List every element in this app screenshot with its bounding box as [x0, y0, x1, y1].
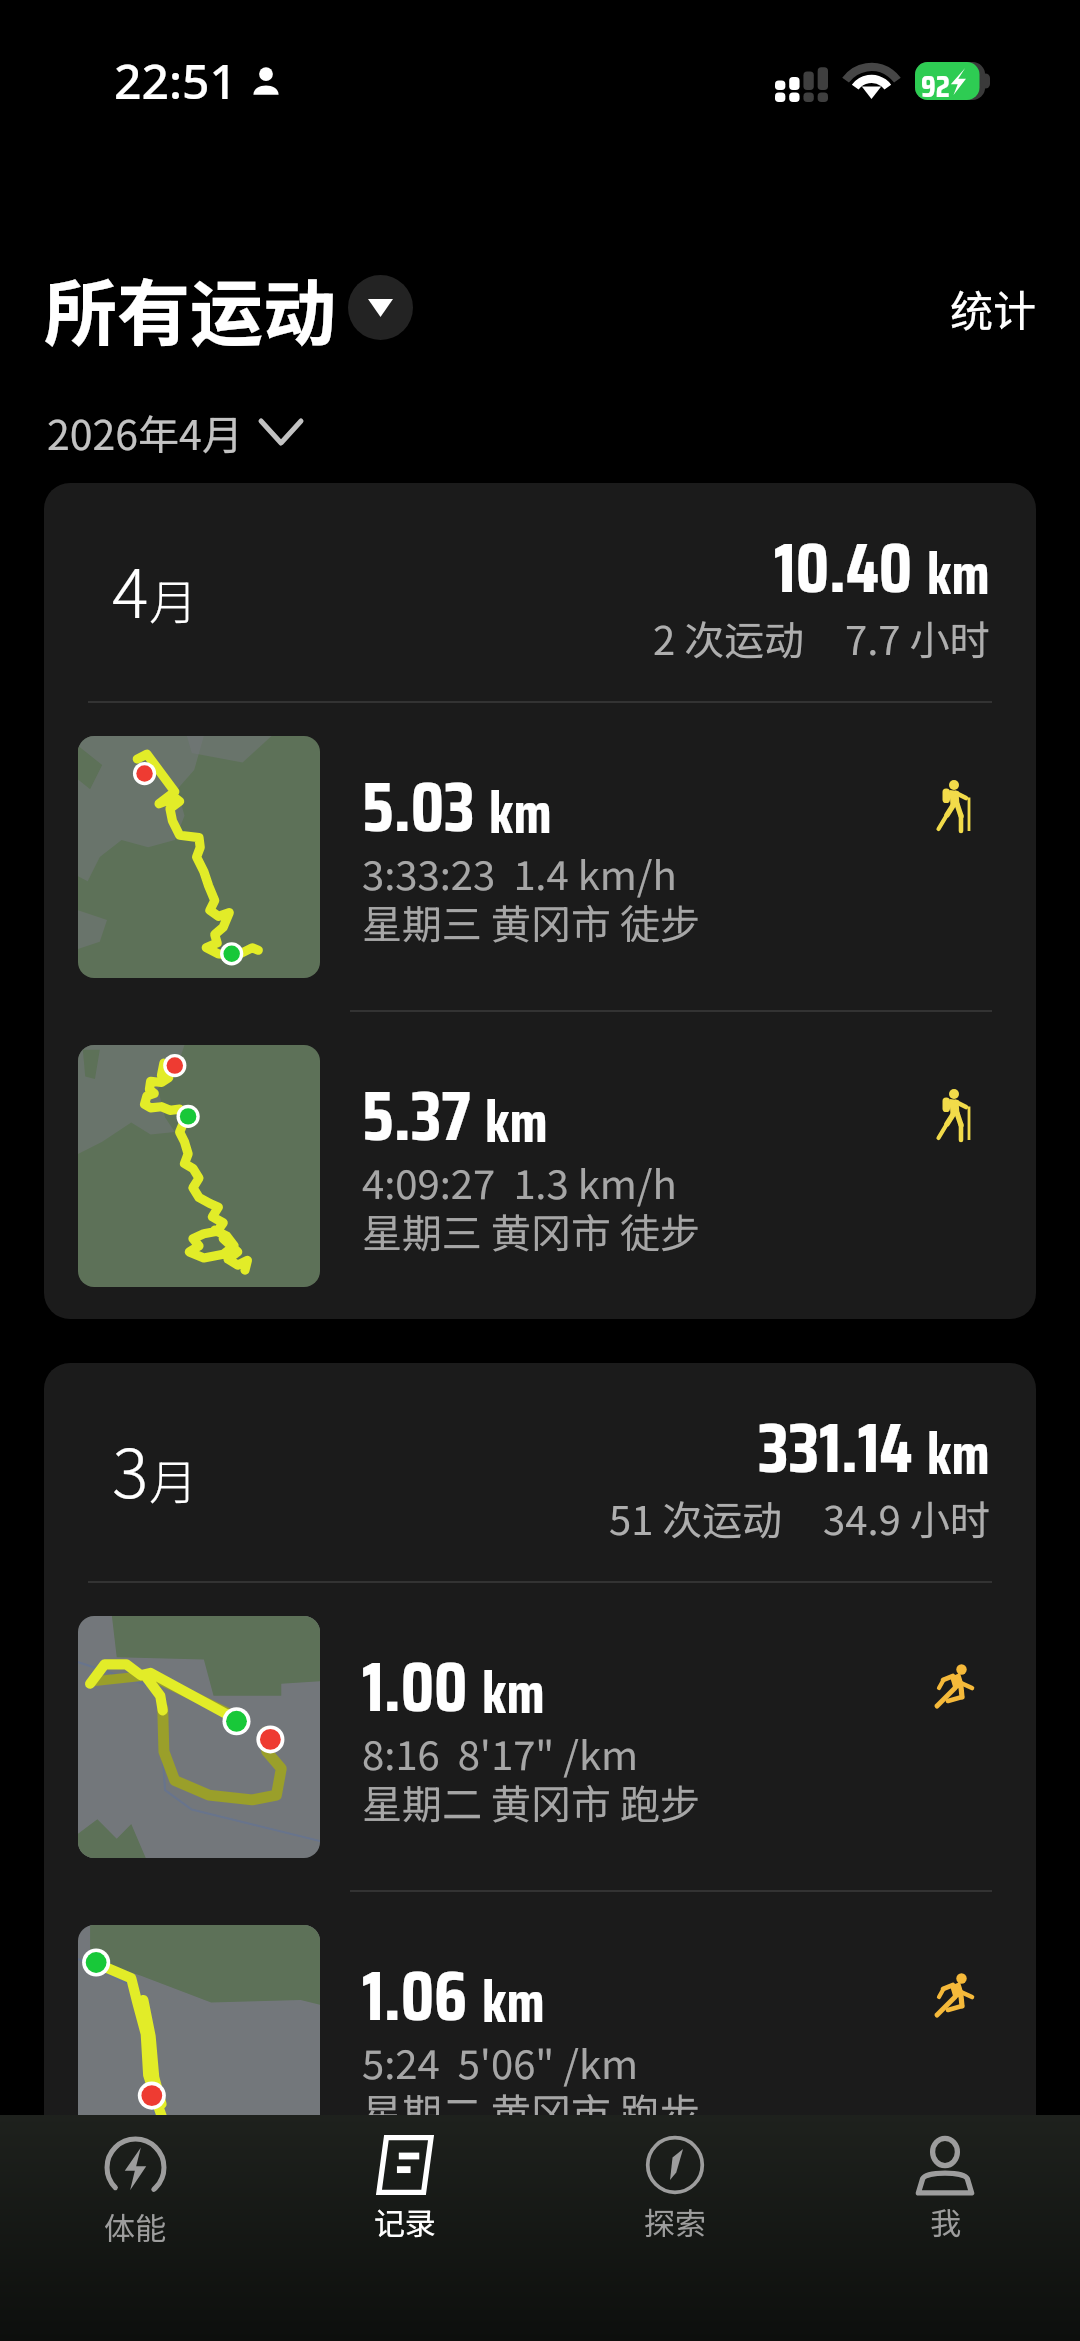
staticText: 3:33:23 1.4 km/h	[362, 844, 677, 902]
staticText: 星期二 黄冈市 跑步	[362, 2082, 700, 2140]
staticText: 331.14	[758, 1393, 913, 1503]
staticText: 5.03	[362, 752, 475, 862]
button[interactable]: 5.03	[44, 703, 1036, 1010]
staticText: 92	[921, 62, 950, 100]
button[interactable]: 所有运动	[44, 255, 413, 360]
staticText: 3	[112, 1419, 149, 1517]
button[interactable]: 1.00	[44, 1583, 1036, 1890]
staticText: km	[482, 1648, 545, 1738]
staticText: 体能	[104, 2204, 166, 2249]
staticText: 记录	[374, 2199, 436, 2244]
button[interactable]: 2026年4月	[47, 402, 301, 461]
staticText: 8:16 8'17" /km	[362, 1724, 639, 1782]
button[interactable]: 探索	[540, 2115, 810, 2341]
staticText: 10.40	[774, 513, 913, 623]
staticText: 2 次运动	[653, 609, 805, 667]
staticText: 5.37	[362, 1061, 471, 1171]
button[interactable]: 5.37	[44, 1012, 1036, 1319]
staticText: 月	[149, 564, 198, 634]
staticText: 星期二 黄冈市 跑步	[362, 1773, 700, 1831]
staticText: 4	[112, 539, 149, 637]
staticText: 7.7 小时	[845, 609, 990, 667]
staticText: km	[927, 1409, 990, 1499]
staticText: 统计	[950, 277, 1036, 339]
staticText: 1.06	[362, 1941, 468, 2051]
staticText: 月	[149, 1444, 198, 1514]
button[interactable]: 1.06	[44, 1892, 1036, 2199]
staticText: 34.9 小时	[823, 1489, 990, 1547]
button[interactable]: 记录	[270, 2115, 540, 2341]
staticText: km	[485, 1077, 548, 1167]
staticText: km	[482, 1957, 545, 2047]
staticText: 4:09:27 1.3 km/h	[362, 1153, 677, 1211]
staticText: 5:24 5'06" /km	[362, 2033, 639, 2091]
staticText: 51 次运动	[609, 1489, 783, 1547]
staticText: 探索	[644, 2199, 706, 2244]
staticText: 我	[930, 2199, 961, 2244]
staticText: 22:51	[114, 48, 237, 113]
staticText: 2026年4月	[47, 402, 243, 461]
button[interactable]: 统计	[950, 277, 1036, 339]
staticText: km	[927, 529, 990, 619]
button[interactable]: 我	[810, 2115, 1080, 2341]
staticText: 星期三 黄冈市 徒步	[362, 893, 700, 951]
staticText: 星期三 黄冈市 徒步	[362, 1202, 700, 1260]
staticText: 1.00	[362, 1632, 468, 1742]
staticText: 所有运动	[44, 255, 336, 360]
button[interactable]: 体能	[0, 2115, 270, 2341]
staticText: km	[489, 768, 552, 858]
